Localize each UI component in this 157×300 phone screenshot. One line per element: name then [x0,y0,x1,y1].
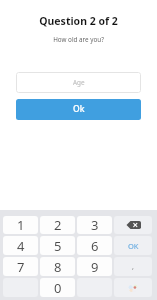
button[interactable]: OK [114,236,152,255]
staticText: , [132,262,134,272]
staticText: 9 [91,258,99,276]
button[interactable]: Age [16,72,141,93]
button[interactable]: 6 [77,236,112,255]
button[interactable]: 8 [40,257,75,276]
staticText: 1 [17,216,25,234]
staticText: 6 [91,237,99,255]
staticText: Age [73,78,85,87]
staticText: 8 [54,258,62,276]
staticText: 2 [54,216,62,234]
staticText: How old are you? [0,35,157,44]
button[interactable]: 2 [40,216,75,234]
staticText: 3 [91,216,99,234]
staticText: OK [128,241,139,251]
staticText: Question 2 of 2 [0,14,157,28]
staticText: Ok [73,103,85,115]
button[interactable]: 9 [77,257,112,276]
button[interactable]: 1 [3,216,38,234]
button[interactable]: 3 [77,216,112,234]
staticText: 4 [17,237,25,255]
button[interactable]: 5 [40,236,75,255]
button[interactable]: Ok [16,99,141,120]
button[interactable]: Change keyboard [114,278,152,297]
staticText: 7 [17,258,25,276]
button[interactable]: 0 [40,278,75,297]
button[interactable]: 7 [3,257,38,276]
staticText: 0 [54,279,62,297]
button[interactable]: Backspace [114,216,152,234]
staticText: 5 [54,237,62,255]
button[interactable]: 4 [3,236,38,255]
